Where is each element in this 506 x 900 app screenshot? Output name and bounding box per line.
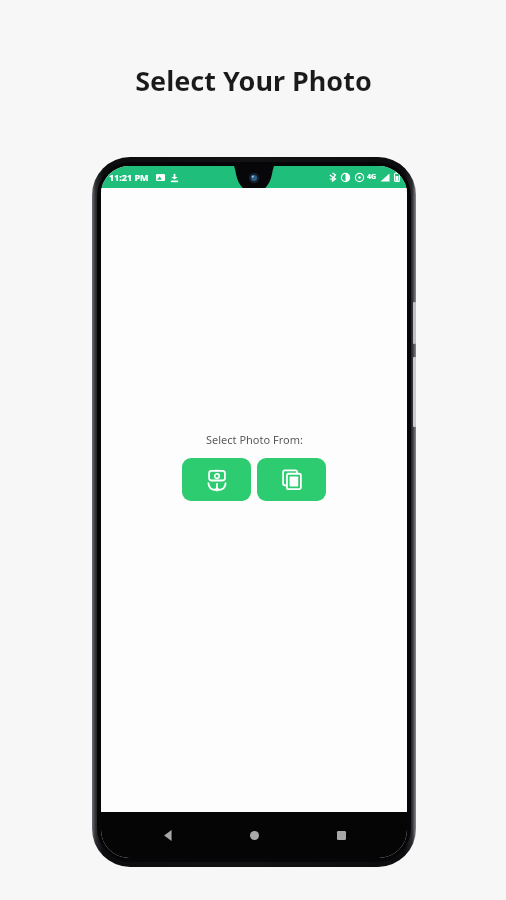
button[interactable]: Back xyxy=(148,815,188,855)
button[interactable]: Take photo with camera xyxy=(182,458,251,501)
staticText: 4G xyxy=(367,172,377,182)
button[interactable]: Choose photo from gallery xyxy=(257,458,326,501)
button[interactable]: Recent apps xyxy=(321,815,361,855)
staticText: Select Photo From: xyxy=(206,432,303,447)
staticText: 11:21 PM xyxy=(109,171,149,183)
button[interactable]: Home xyxy=(234,815,274,855)
staticText: Select Your Photo xyxy=(135,62,372,99)
